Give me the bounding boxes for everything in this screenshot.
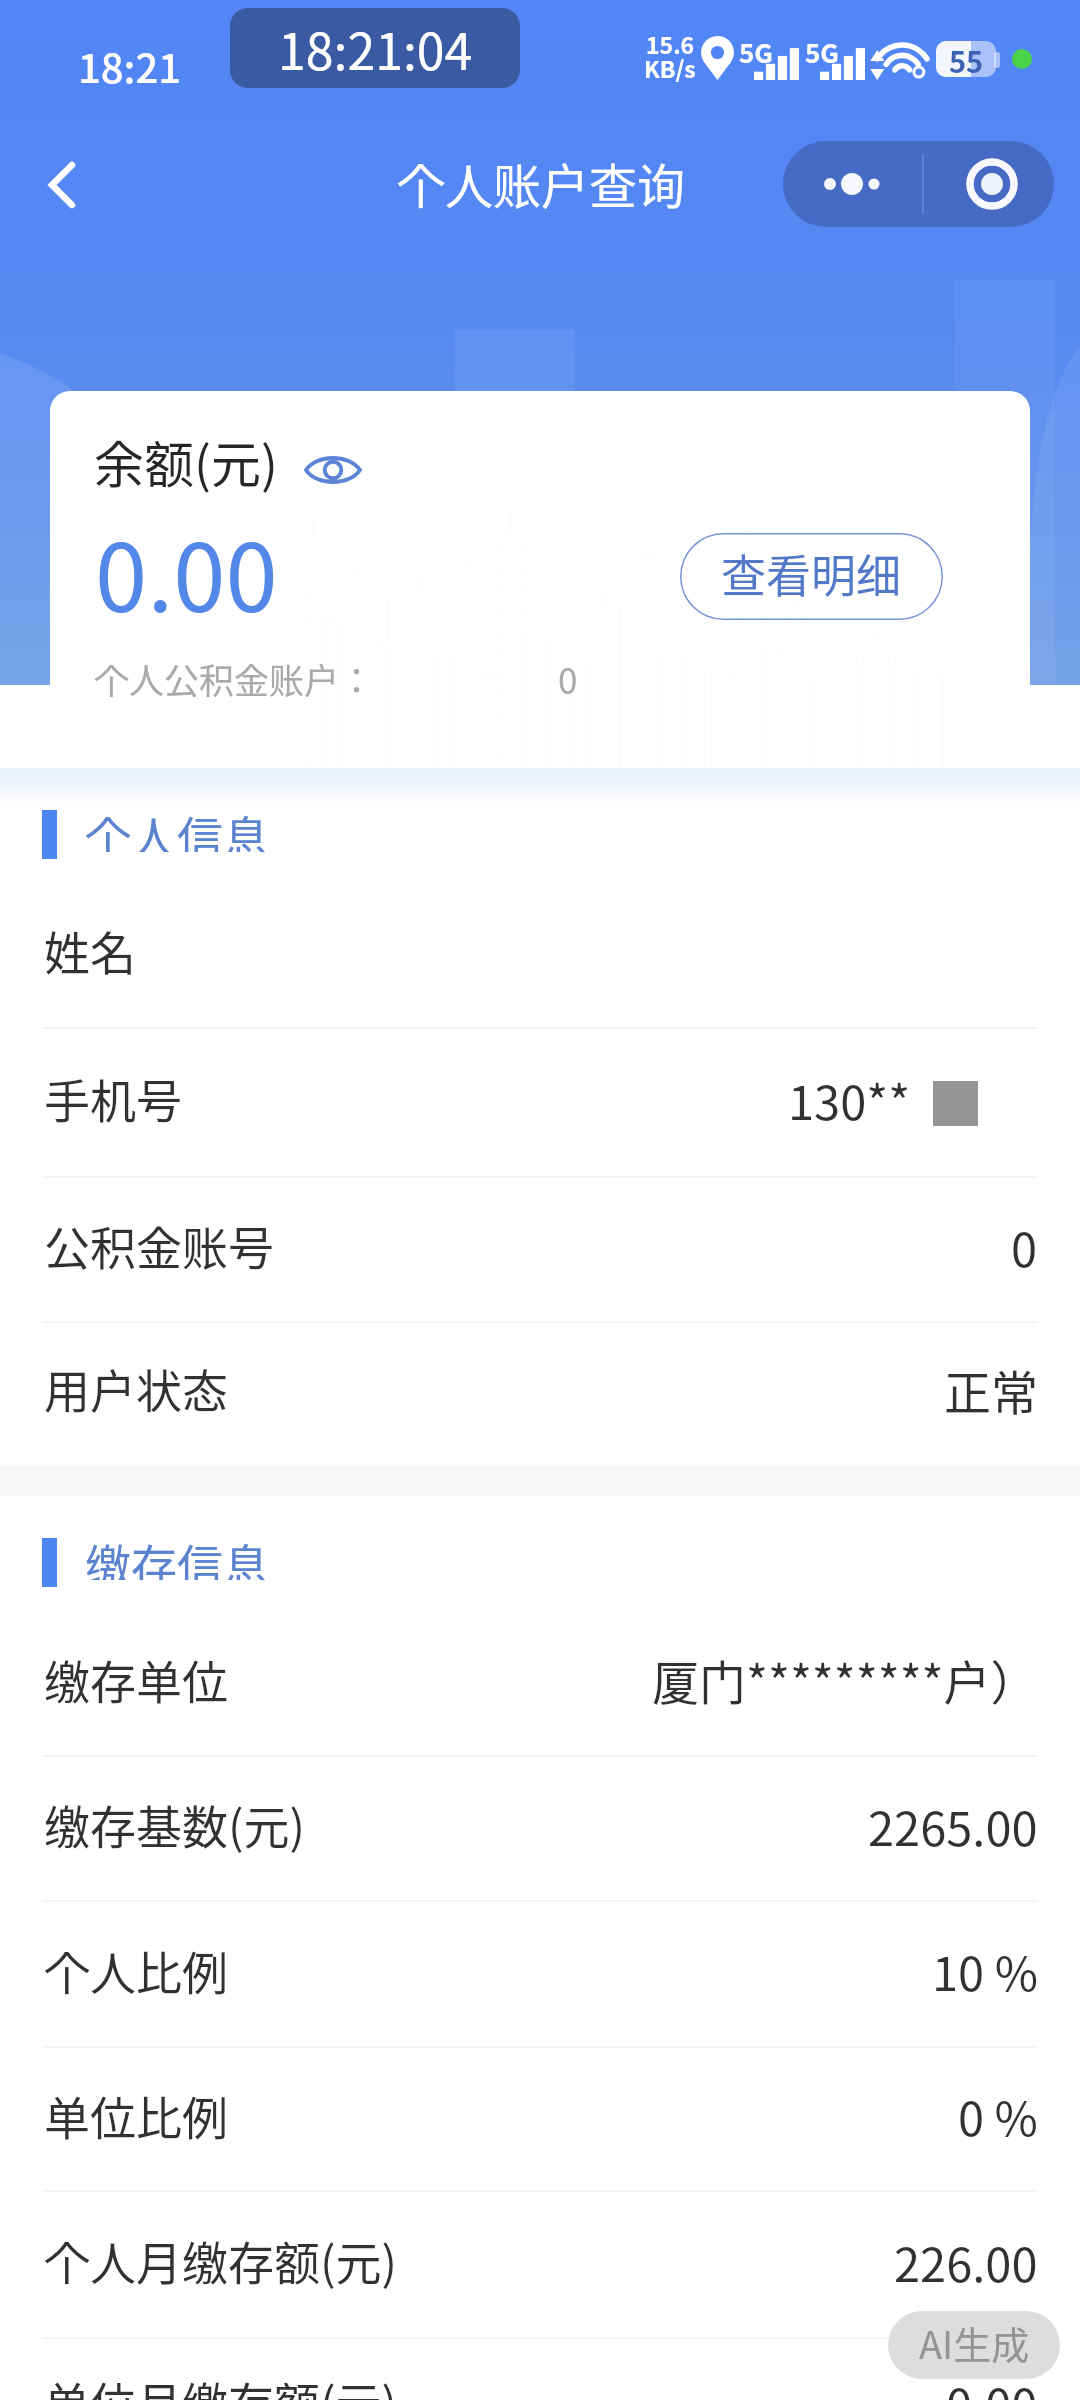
staticText: 厦门*********户）: [652, 1645, 1038, 1713]
staticText: 5G: [805, 33, 839, 71]
staticText: 10 %: [932, 1936, 1038, 2004]
staticText: 缴存单位: [44, 1646, 228, 1713]
staticText: 缴存基数(元): [44, 1791, 306, 1858]
staticText: 18:21: [78, 37, 182, 95]
staticText: 个人公积金账户：: [94, 653, 375, 704]
staticText: 18:21:04: [278, 12, 473, 84]
staticText: 查看明细: [721, 541, 902, 606]
button[interactable]: Toggle balance visibility: [300, 440, 366, 490]
staticText: 0.00: [946, 2368, 1038, 2400]
button[interactable]: AI生成: [888, 2311, 1060, 2379]
staticText: 0: [1011, 1212, 1038, 1280]
staticText: 单位比例: [44, 2082, 228, 2149]
staticText: 15.6: [646, 27, 695, 60]
staticText: 单位月缴存额(元): [44, 2368, 398, 2400]
button[interactable]: Back: [7, 130, 117, 240]
button[interactable]: 个人月缴存额(元): [0, 2192, 1080, 2339]
staticText: 个人信息: [85, 802, 269, 852]
staticText: 个人月缴存额(元): [44, 2227, 398, 2294]
staticText: 手机号: [44, 1065, 182, 1132]
staticText: 个人账户查询: [397, 148, 686, 218]
staticText: 姓名: [44, 917, 136, 984]
staticText: 0.00: [95, 503, 278, 639]
staticText: 0: [558, 653, 578, 704]
button[interactable]: 单位月缴存额(元): [0, 2339, 1080, 2400]
button[interactable]: Close mini program: [924, 141, 1054, 227]
staticText: 2265.00: [868, 1791, 1038, 1859]
button[interactable]: 个人比例: [0, 1902, 1080, 2048]
staticText: 226.00: [894, 2227, 1038, 2295]
staticText: 正常: [944, 1355, 1038, 1423]
staticText: 缴存信息: [85, 1530, 269, 1580]
staticText: AI生成: [919, 2315, 1030, 2370]
button[interactable]: More options: [783, 141, 922, 227]
staticText: 5G: [739, 33, 773, 71]
button[interactable]: 手机号: [0, 1029, 1080, 1178]
staticText: 公积金账号: [44, 1212, 274, 1279]
staticText: 余额(元): [94, 425, 278, 497]
button[interactable]: 缴存基数(元): [0, 1757, 1080, 1902]
staticText: KB/s: [644, 51, 696, 84]
button[interactable]: 单位比例: [0, 2048, 1080, 2192]
button[interactable]: 查看明细: [680, 533, 943, 620]
staticText: 用户状态: [44, 1355, 228, 1422]
staticText: 0 %: [958, 2081, 1038, 2149]
staticText: 个人比例: [44, 1937, 228, 2004]
button[interactable]: 姓名: [0, 882, 1080, 1029]
button[interactable]: 缴存单位: [0, 1611, 1080, 1757]
button[interactable]: 公积金账号: [0, 1178, 1080, 1323]
staticText: 55: [949, 41, 984, 75]
staticText: 130**: [788, 1065, 911, 1133]
button[interactable]: 用户状态: [0, 1323, 1080, 1464]
